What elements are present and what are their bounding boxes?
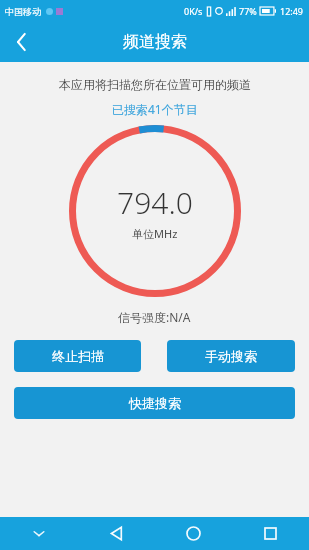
staticText: 快捷搜索	[129, 395, 181, 411]
button[interactable]: 终止扫描	[14, 340, 141, 372]
button[interactable]: Back	[0, 22, 42, 62]
button[interactable]: Hide keyboard	[0, 517, 78, 550]
staticText: 手动搜索	[205, 348, 257, 364]
staticText: 12:49	[280, 5, 304, 17]
button[interactable]: Home	[155, 517, 232, 550]
staticText: 信号强度:N/A	[118, 309, 191, 325]
staticText: 中国移动	[5, 6, 41, 17]
staticText: 本应用将扫描您所在位置可用的频道	[59, 77, 251, 92]
staticText: 单位MHz	[132, 226, 178, 241]
staticText: 0K/s	[184, 5, 203, 17]
button[interactable]: Back	[78, 517, 155, 550]
button[interactable]: 快捷搜索	[14, 387, 295, 419]
staticText: 已搜索41个节目	[112, 101, 198, 117]
staticText: 终止扫描	[52, 348, 104, 364]
staticText: 794.0	[117, 182, 193, 223]
button[interactable]: 手动搜索	[167, 340, 295, 372]
staticText: 频道搜索	[123, 32, 187, 52]
button[interactable]: Recents	[232, 517, 309, 550]
staticText: 77%	[239, 5, 257, 17]
